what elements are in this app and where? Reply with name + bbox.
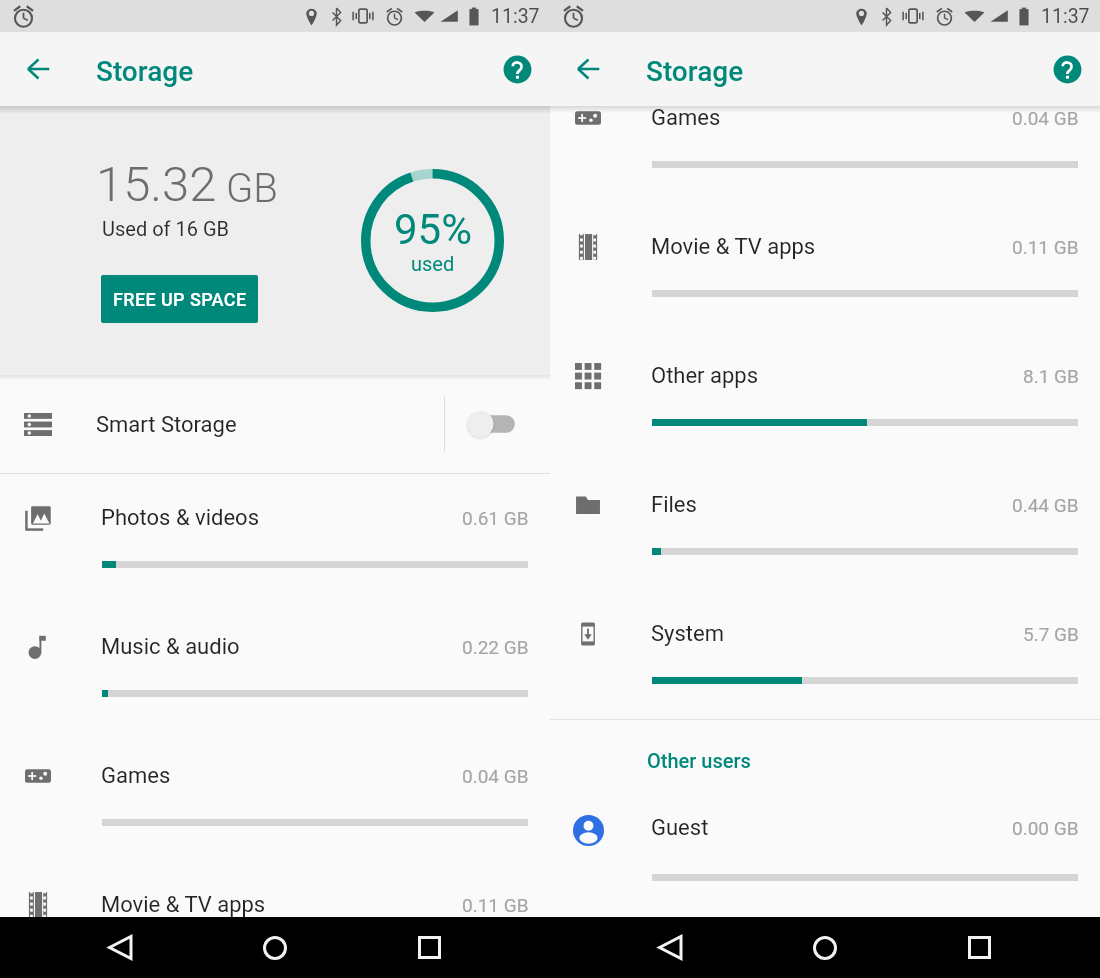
staticText: FREE UP SPACE bbox=[113, 289, 247, 310]
staticText: GB bbox=[226, 165, 278, 212]
button[interactable]: Recent apps bbox=[352, 917, 507, 978]
staticText: Games bbox=[101, 763, 171, 789]
staticText: Files bbox=[651, 492, 697, 518]
staticText: 0.04 GB bbox=[1012, 107, 1079, 129]
staticText: Music & audio bbox=[101, 634, 240, 660]
button[interactable]: System bbox=[550, 590, 1100, 719]
button[interactable]: Games bbox=[0, 732, 550, 861]
staticText: 15.32 bbox=[96, 156, 217, 213]
button[interactable]: Movie & TV apps bbox=[550, 203, 1100, 332]
staticText: Smart Storage bbox=[96, 412, 237, 438]
button[interactable]: Back bbox=[43, 917, 197, 978]
staticText: Storage bbox=[646, 55, 744, 88]
staticText: System bbox=[651, 621, 724, 647]
button[interactable]: Help bbox=[495, 47, 539, 91]
button[interactable]: Smart Storage toggle bbox=[462, 399, 520, 449]
staticText: Storage bbox=[96, 55, 194, 88]
button[interactable]: Photos & videos bbox=[0, 474, 550, 603]
staticText: 0.11 GB bbox=[462, 894, 529, 916]
staticText: 8.1 GB bbox=[1023, 365, 1079, 387]
staticText: 0.44 GB bbox=[1012, 494, 1079, 516]
staticText: Photos & videos bbox=[101, 505, 260, 531]
staticText: Movie & TV apps bbox=[651, 234, 816, 260]
button[interactable]: Movie & TV apps bbox=[0, 861, 550, 978]
staticText: Games bbox=[651, 105, 721, 131]
staticText: Other users bbox=[647, 749, 751, 772]
button[interactable]: Recent apps bbox=[902, 917, 1057, 978]
staticText: Other apps bbox=[651, 363, 759, 389]
button[interactable]: Home bbox=[197, 917, 352, 978]
staticText: Guest bbox=[651, 815, 709, 841]
staticText: used bbox=[411, 252, 455, 275]
button[interactable]: Navigate up bbox=[564, 45, 612, 93]
staticText: 0.04 GB bbox=[462, 765, 529, 787]
staticText: 5.7 GB bbox=[1023, 623, 1079, 645]
button[interactable]: Navigate up bbox=[14, 45, 62, 93]
staticText: 11:37 bbox=[491, 5, 540, 28]
staticText: 0.61 GB bbox=[462, 507, 529, 529]
button[interactable]: Home bbox=[747, 917, 902, 978]
staticText: Movie & TV apps bbox=[101, 892, 266, 918]
button[interactable]: Other apps bbox=[550, 332, 1100, 461]
button[interactable]: Music & audio bbox=[0, 603, 550, 732]
button[interactable]: Help bbox=[1045, 47, 1089, 91]
staticText: 0.00 GB bbox=[1012, 817, 1079, 839]
button[interactable]: Smart Storage bbox=[0, 375, 550, 473]
staticText: 11:37 bbox=[1041, 5, 1090, 28]
staticText: 0.22 GB bbox=[462, 636, 529, 658]
staticText: 0.11 GB bbox=[1012, 236, 1079, 258]
button[interactable]: Files bbox=[550, 461, 1100, 590]
staticText: Used of 16 GB bbox=[102, 217, 229, 240]
button[interactable]: FREE UP SPACE bbox=[101, 275, 258, 323]
button[interactable]: Guest bbox=[550, 795, 1100, 905]
button[interactable]: Back bbox=[593, 917, 747, 978]
staticText: 95% bbox=[394, 205, 472, 254]
